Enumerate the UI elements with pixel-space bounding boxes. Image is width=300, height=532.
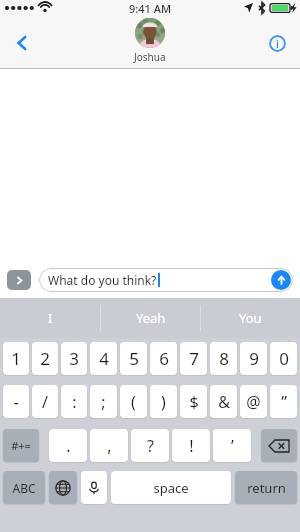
staticText: 6 [159, 347, 169, 370]
staticText: 9:41 AM [129, 1, 172, 16]
button[interactable]: 3 [61, 342, 87, 375]
staticText: ! [189, 435, 194, 457]
button[interactable]: - [3, 385, 29, 418]
button[interactable]: ABC [3, 471, 45, 504]
button[interactable]: 8 [210, 342, 237, 375]
button[interactable]: 1 [3, 342, 29, 375]
button[interactable]: , [90, 429, 128, 462]
button[interactable]: 2 [32, 342, 58, 375]
button[interactable]: 6 [150, 342, 177, 375]
staticText: 0 [279, 347, 289, 370]
button[interactable]: You [201, 298, 300, 338]
button[interactable]: 0 [270, 342, 297, 375]
staticText: 2 [40, 347, 50, 370]
button[interactable]: I [0, 298, 100, 338]
button[interactable]: Back [6, 27, 38, 59]
staticText: #+= [11, 438, 31, 453]
staticText: Yeah [136, 309, 166, 327]
button[interactable]: @ [240, 385, 267, 418]
button[interactable]: return [235, 471, 297, 504]
staticText: You [239, 309, 262, 327]
button[interactable]: ” [270, 385, 297, 418]
staticText: 3 [69, 347, 79, 370]
button[interactable]: What do you think? [39, 268, 293, 292]
staticText: ” [281, 391, 287, 413]
button[interactable]: 9 [240, 342, 267, 375]
staticText: ABC [12, 480, 36, 496]
staticText: @ [246, 391, 261, 413]
button[interactable]: Joshua [134, 18, 166, 64]
staticText: ; [101, 391, 106, 413]
staticText: ( [131, 391, 136, 413]
button[interactable]: / [32, 385, 58, 418]
button[interactable]: space [111, 471, 231, 504]
button[interactable]: . [49, 429, 87, 462]
button[interactable]: : [61, 385, 87, 418]
button[interactable]: ) [150, 385, 177, 418]
button[interactable]: App drawer [7, 270, 31, 290]
button[interactable]: 7 [180, 342, 207, 375]
staticText: 5 [129, 347, 139, 370]
staticText: $ [189, 391, 199, 413]
staticText: space [153, 479, 189, 497]
button[interactable]: #+= [3, 429, 39, 462]
staticText: i [276, 36, 279, 51]
button[interactable]: Change keyboard [49, 471, 77, 504]
staticText: 9 [249, 347, 259, 370]
button[interactable]: ? [131, 429, 169, 462]
staticText: return [247, 479, 286, 497]
staticText: ? [147, 435, 154, 457]
button[interactable]: Delete [261, 429, 297, 462]
staticText: 1 [11, 347, 21, 370]
staticText: ) [161, 391, 166, 413]
staticText: - [13, 391, 19, 413]
staticText: , [107, 435, 112, 457]
staticText: 7 [189, 347, 199, 370]
staticText: 4 [99, 347, 109, 370]
button[interactable]: Send [271, 270, 291, 290]
staticText: / [42, 391, 48, 413]
button[interactable]: ( [120, 385, 147, 418]
button[interactable]: Details [262, 28, 292, 58]
staticText: Joshua [134, 50, 166, 64]
staticText: ’ [231, 435, 234, 457]
button[interactable]: 4 [90, 342, 117, 375]
button[interactable]: ’ [213, 429, 251, 462]
button[interactable]: & [210, 385, 237, 418]
staticText: 8 [219, 347, 229, 370]
button[interactable]: ! [172, 429, 210, 462]
button[interactable]: Dictation [81, 471, 107, 504]
button[interactable]: Yeah [101, 298, 200, 338]
staticText: I [48, 309, 53, 327]
button[interactable]: ; [90, 385, 117, 418]
staticText: What do you think? [48, 272, 157, 288]
button[interactable]: $ [180, 385, 207, 418]
button[interactable]: 5 [120, 342, 147, 375]
staticText: : [72, 391, 77, 413]
staticText: . [66, 435, 71, 457]
staticText: & [218, 391, 230, 413]
